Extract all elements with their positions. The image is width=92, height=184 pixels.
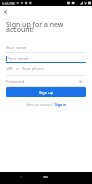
button[interactable]: Sign up	[6, 87, 86, 97]
staticText: Sign up	[39, 90, 54, 95]
staticText: Password	[6, 79, 25, 84]
staticText: +91	[6, 66, 13, 71]
button[interactable]: Back	[0, 7, 10, 17]
staticText: Sign in	[55, 102, 67, 107]
button[interactable]: Back	[16, 172, 26, 182]
staticText: Your name	[6, 45, 27, 50]
button[interactable]: Sign in	[55, 102, 67, 107]
button[interactable]: Show password	[76, 77, 85, 86]
staticText: 5:05 PM	[2, 1, 15, 5]
staticText: Sign up for a new	[6, 20, 64, 30]
staticText: Have an account?	[26, 102, 55, 107]
button[interactable]: Home	[43, 176, 48, 178]
staticText: Your phone	[22, 66, 44, 71]
staticText: account!	[6, 25, 34, 35]
staticText: Your email	[8, 56, 28, 61]
